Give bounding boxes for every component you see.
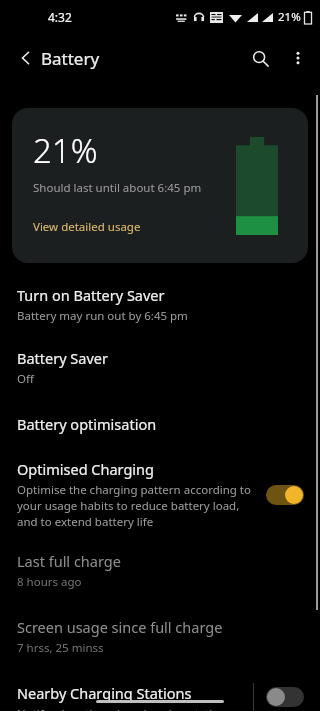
button[interactable]: Battery optimisation bbox=[0, 414, 320, 434]
staticText: Last full charge bbox=[17, 551, 121, 571]
staticText: 8 hours ago bbox=[17, 574, 82, 590]
staticText: Optimised Charging bbox=[17, 459, 154, 479]
staticText: Nearby Charging Stations bbox=[17, 683, 192, 703]
staticText: 21% bbox=[33, 128, 98, 173]
staticText: 7 hrss, 25 minss bbox=[17, 640, 104, 656]
button[interactable]: Optimised Charging bbox=[0, 459, 264, 530]
staticText: Battery bbox=[41, 47, 100, 70]
staticText: Battery may run out by 6:45 pm bbox=[17, 308, 188, 324]
button[interactable]: Battery Saver bbox=[0, 348, 320, 387]
staticText: Screen usage since full charge bbox=[17, 617, 223, 637]
staticText: Should last until about 6:45 pm bbox=[33, 180, 202, 196]
staticText: Optimise the charging pattern according … bbox=[17, 482, 254, 530]
button[interactable]: Search bbox=[240, 38, 280, 78]
button[interactable]: Nearby Charging Stations bbox=[0, 683, 253, 711]
button[interactable]: Back bbox=[8, 40, 44, 76]
button[interactable]: More options bbox=[280, 40, 316, 76]
button[interactable]: Last full charge bbox=[0, 551, 320, 590]
staticText: Battery Saver bbox=[17, 348, 108, 368]
button[interactable]: Turn on Battery Saver bbox=[0, 285, 320, 324]
staticText: 4:32 bbox=[48, 9, 72, 25]
staticText: 21% bbox=[278, 9, 301, 25]
button[interactable]: Nearby Charging Stations off bbox=[264, 683, 306, 711]
button[interactable]: Screen usage since full charge bbox=[0, 617, 320, 656]
button[interactable]: 21% bbox=[12, 108, 308, 263]
button[interactable]: View detailed usage bbox=[33, 219, 141, 235]
button[interactable]: Optimised Charging on bbox=[264, 478, 306, 512]
staticText: Notify when there is a charging station … bbox=[17, 706, 243, 711]
staticText: Turn on Battery Saver bbox=[17, 285, 165, 305]
staticText: Battery optimisation bbox=[17, 414, 157, 434]
staticText: View detailed usage bbox=[33, 219, 141, 235]
staticText: Off bbox=[17, 371, 34, 387]
